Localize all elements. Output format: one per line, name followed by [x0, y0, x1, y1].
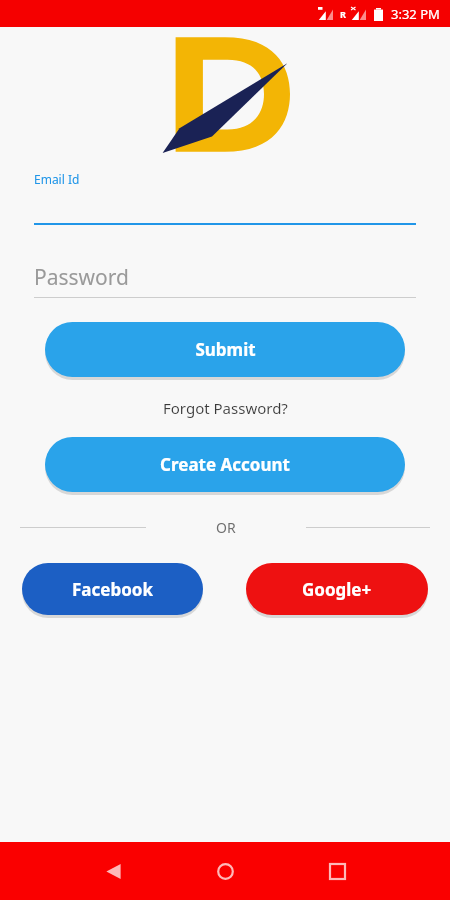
button[interactable]: Back — [91, 849, 135, 893]
button[interactable]: Facebook — [22, 563, 203, 615]
staticText: R — [340, 8, 346, 20]
staticText: Submit — [195, 338, 256, 361]
button[interactable]: Home — [203, 849, 247, 893]
staticText: Create Account — [160, 453, 290, 476]
staticText: OR — [216, 518, 236, 537]
button[interactable]: Recents — [315, 849, 359, 893]
button[interactable]: Create Account — [45, 437, 405, 492]
button[interactable]: Submit — [45, 322, 405, 377]
staticText: Email Id — [34, 171, 80, 187]
button[interactable]: Forgot Password? — [157, 395, 294, 421]
button[interactable]: Password — [34, 263, 416, 298]
staticText: Password — [34, 263, 129, 292]
staticText: Facebook — [72, 578, 153, 601]
button[interactable]: Google+ — [246, 563, 428, 615]
staticText: Google+ — [302, 578, 372, 601]
staticText: 3:32 PM — [391, 5, 440, 23]
